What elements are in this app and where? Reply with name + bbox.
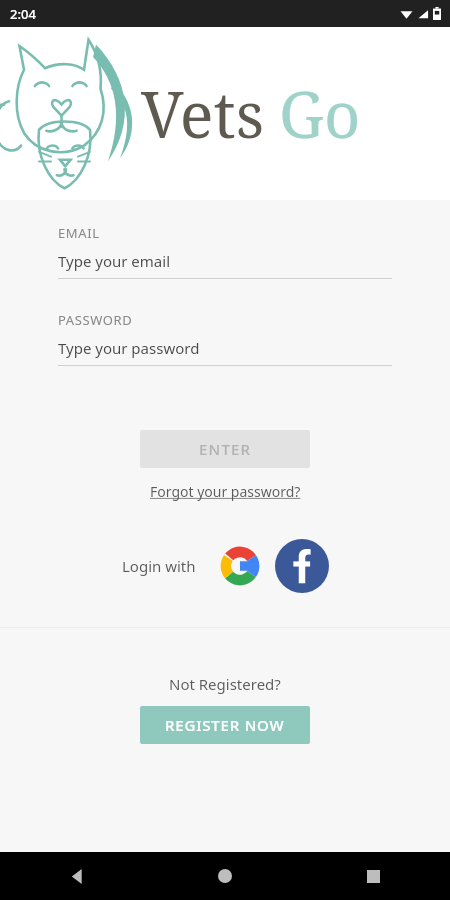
staticText: PASSWORD	[58, 311, 133, 329]
staticText: Login with	[122, 556, 196, 576]
staticText: Not Registered?	[169, 674, 281, 694]
button[interactable]: REGISTER NOW	[140, 706, 310, 744]
button[interactable]: Back	[56, 855, 98, 897]
staticText: Go	[279, 71, 361, 157]
button[interactable]: Type your password	[58, 338, 392, 358]
staticText: Type your email	[58, 251, 171, 271]
button[interactable]: Login with Facebook	[275, 539, 329, 593]
staticText: Forgot your password?	[150, 482, 301, 501]
button[interactable]: Forgot your password?	[146, 480, 305, 503]
staticText: EMAIL	[58, 224, 100, 242]
button[interactable]: Recent apps	[352, 855, 394, 897]
staticText: ENTER	[199, 439, 252, 459]
staticText: Type your password	[58, 338, 200, 358]
button[interactable]: Home	[204, 855, 246, 897]
staticText: REGISTER NOW	[165, 715, 285, 735]
staticText: Vets	[141, 71, 265, 157]
button[interactable]: Type your email	[58, 251, 392, 271]
button[interactable]: Login with Google	[213, 539, 267, 593]
staticText: 2:04	[10, 5, 36, 23]
button[interactable]: ENTER	[140, 430, 310, 468]
